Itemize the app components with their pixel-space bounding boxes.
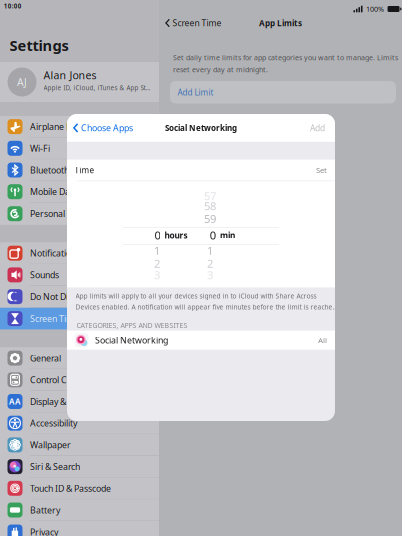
staticText: Choose Apps <box>81 122 133 134</box>
staticText: 3 <box>207 268 213 282</box>
button[interactable]: Privacy <box>0 521 159 536</box>
staticText: Wallpaper <box>30 439 71 451</box>
staticText: Touch ID & Passcode <box>30 482 111 494</box>
button[interactable]: Do Not Disturb <box>0 286 159 308</box>
staticText: 58 <box>204 198 216 213</box>
staticText: General <box>30 352 61 364</box>
staticText: Screen Time <box>172 17 221 29</box>
staticText: Set daily time limits for app categories… <box>173 53 398 62</box>
staticText: reset every day at midnight. <box>173 65 268 74</box>
staticText: Screen Time <box>30 313 79 324</box>
staticText: 0 <box>210 228 216 243</box>
staticText: AA <box>9 396 21 407</box>
staticText: 57 <box>204 189 216 203</box>
staticText: Sounds <box>30 269 59 281</box>
button[interactable]: General <box>0 347 159 369</box>
button[interactable]: Screen Time <box>0 308 159 329</box>
staticText: App limits will apply to all your device… <box>75 291 316 300</box>
staticText: Add Limit <box>177 87 213 98</box>
button[interactable]: Notifications <box>0 243 159 264</box>
staticText: 2 <box>154 256 160 271</box>
staticText: Mobile Data <box>30 186 78 198</box>
button[interactable]: Siri & Search <box>0 456 159 478</box>
staticText: hours <box>165 230 188 241</box>
staticText: Notifications <box>30 247 80 259</box>
button[interactable]: Mobile Data <box>0 181 159 203</box>
button[interactable]: Sounds <box>0 264 159 286</box>
staticText: Add <box>310 122 325 133</box>
staticText: Display & Brightness <box>30 396 111 407</box>
button[interactable]: Personal Hotspot <box>0 203 159 225</box>
staticText: Bluetooth <box>30 164 69 176</box>
button[interactable]: Bluetooth <box>0 159 159 181</box>
staticText: 3 <box>154 268 160 282</box>
button[interactable]: Screen Time <box>159 0 239 20</box>
staticText: Apple ID, iCloud, iTunes & App St… <box>43 84 150 92</box>
staticText: Time <box>75 165 95 175</box>
staticText: 2 <box>207 256 213 271</box>
staticText: Control Centre <box>30 374 88 386</box>
staticText: All <box>318 335 327 345</box>
staticText: Siri & Search <box>30 461 80 472</box>
staticText: 1 <box>154 243 160 258</box>
staticText: min <box>220 230 235 241</box>
staticText: Devices enabled. A notification will app… <box>75 302 337 311</box>
button[interactable]: Wi-Fi <box>0 138 159 159</box>
button[interactable]: Wallpaper <box>0 434 159 456</box>
staticText: Wi-Fi <box>30 142 50 154</box>
staticText: Battery <box>30 504 60 516</box>
staticText: Social Networking <box>165 123 237 133</box>
staticText: AJ <box>17 75 27 89</box>
staticText: Personal Hotspot <box>30 208 99 220</box>
button[interactable]: Battery <box>0 499 159 521</box>
staticText: Set <box>316 165 327 175</box>
staticText: Alan Jones <box>43 68 96 82</box>
staticText: Settings <box>9 35 68 55</box>
staticText: Do Not Disturb <box>30 291 89 302</box>
button[interactable]: Airplane Mode <box>0 116 159 138</box>
button[interactable]: AA <box>0 391 159 413</box>
button[interactable]: Add <box>67 114 107 142</box>
button[interactable]: Social Networking <box>67 114 335 133</box>
button[interactable]: Add Limit <box>159 0 385 22</box>
staticText: Accessibility <box>30 417 77 429</box>
staticText: Airplane Mode <box>30 121 89 132</box>
staticText: Privacy <box>30 526 58 536</box>
button[interactable]: Choose Apps <box>67 114 139 142</box>
staticText: 10:00 <box>4 2 22 10</box>
staticText: Social Networking <box>95 334 168 346</box>
button[interactable]: Touch ID & Passcode <box>0 478 159 499</box>
staticText: 100% <box>366 4 384 14</box>
button[interactable]: AJ <box>0 62 159 102</box>
button[interactable]: Set <box>67 114 117 135</box>
staticText: 1 <box>207 243 213 258</box>
button[interactable]: Accessibility <box>0 413 159 434</box>
button[interactable]: Control Centre <box>0 369 159 391</box>
staticText: CATEGORIES, APPS AND WEBSITES <box>76 321 187 330</box>
staticText: 0 <box>154 228 160 243</box>
staticText: App Limits <box>259 18 302 28</box>
staticText: 59 <box>204 211 216 226</box>
